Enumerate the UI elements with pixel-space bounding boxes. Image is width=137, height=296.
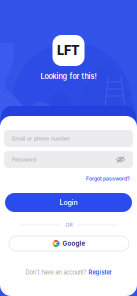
- staticText: Email or phone number: [12, 135, 70, 142]
- staticText: Don't have an account?: [25, 269, 86, 276]
- staticText: Google: [62, 240, 85, 247]
- staticText: Looking for this!: [40, 72, 96, 81]
- staticText: Forgot password?: [86, 175, 130, 182]
- staticText: Password: [12, 156, 36, 163]
- button[interactable]: Forgot password?: [4, 174, 130, 183]
- button[interactable]: Login: [5, 193, 132, 212]
- staticText: OR: [65, 222, 72, 228]
- button[interactable]: Google: [9, 236, 129, 251]
- staticText: Register: [88, 269, 111, 276]
- staticText: Login: [59, 198, 77, 207]
- button[interactable]: Don't have an account?: [0, 268, 137, 277]
- staticText: LFT: [57, 43, 80, 58]
